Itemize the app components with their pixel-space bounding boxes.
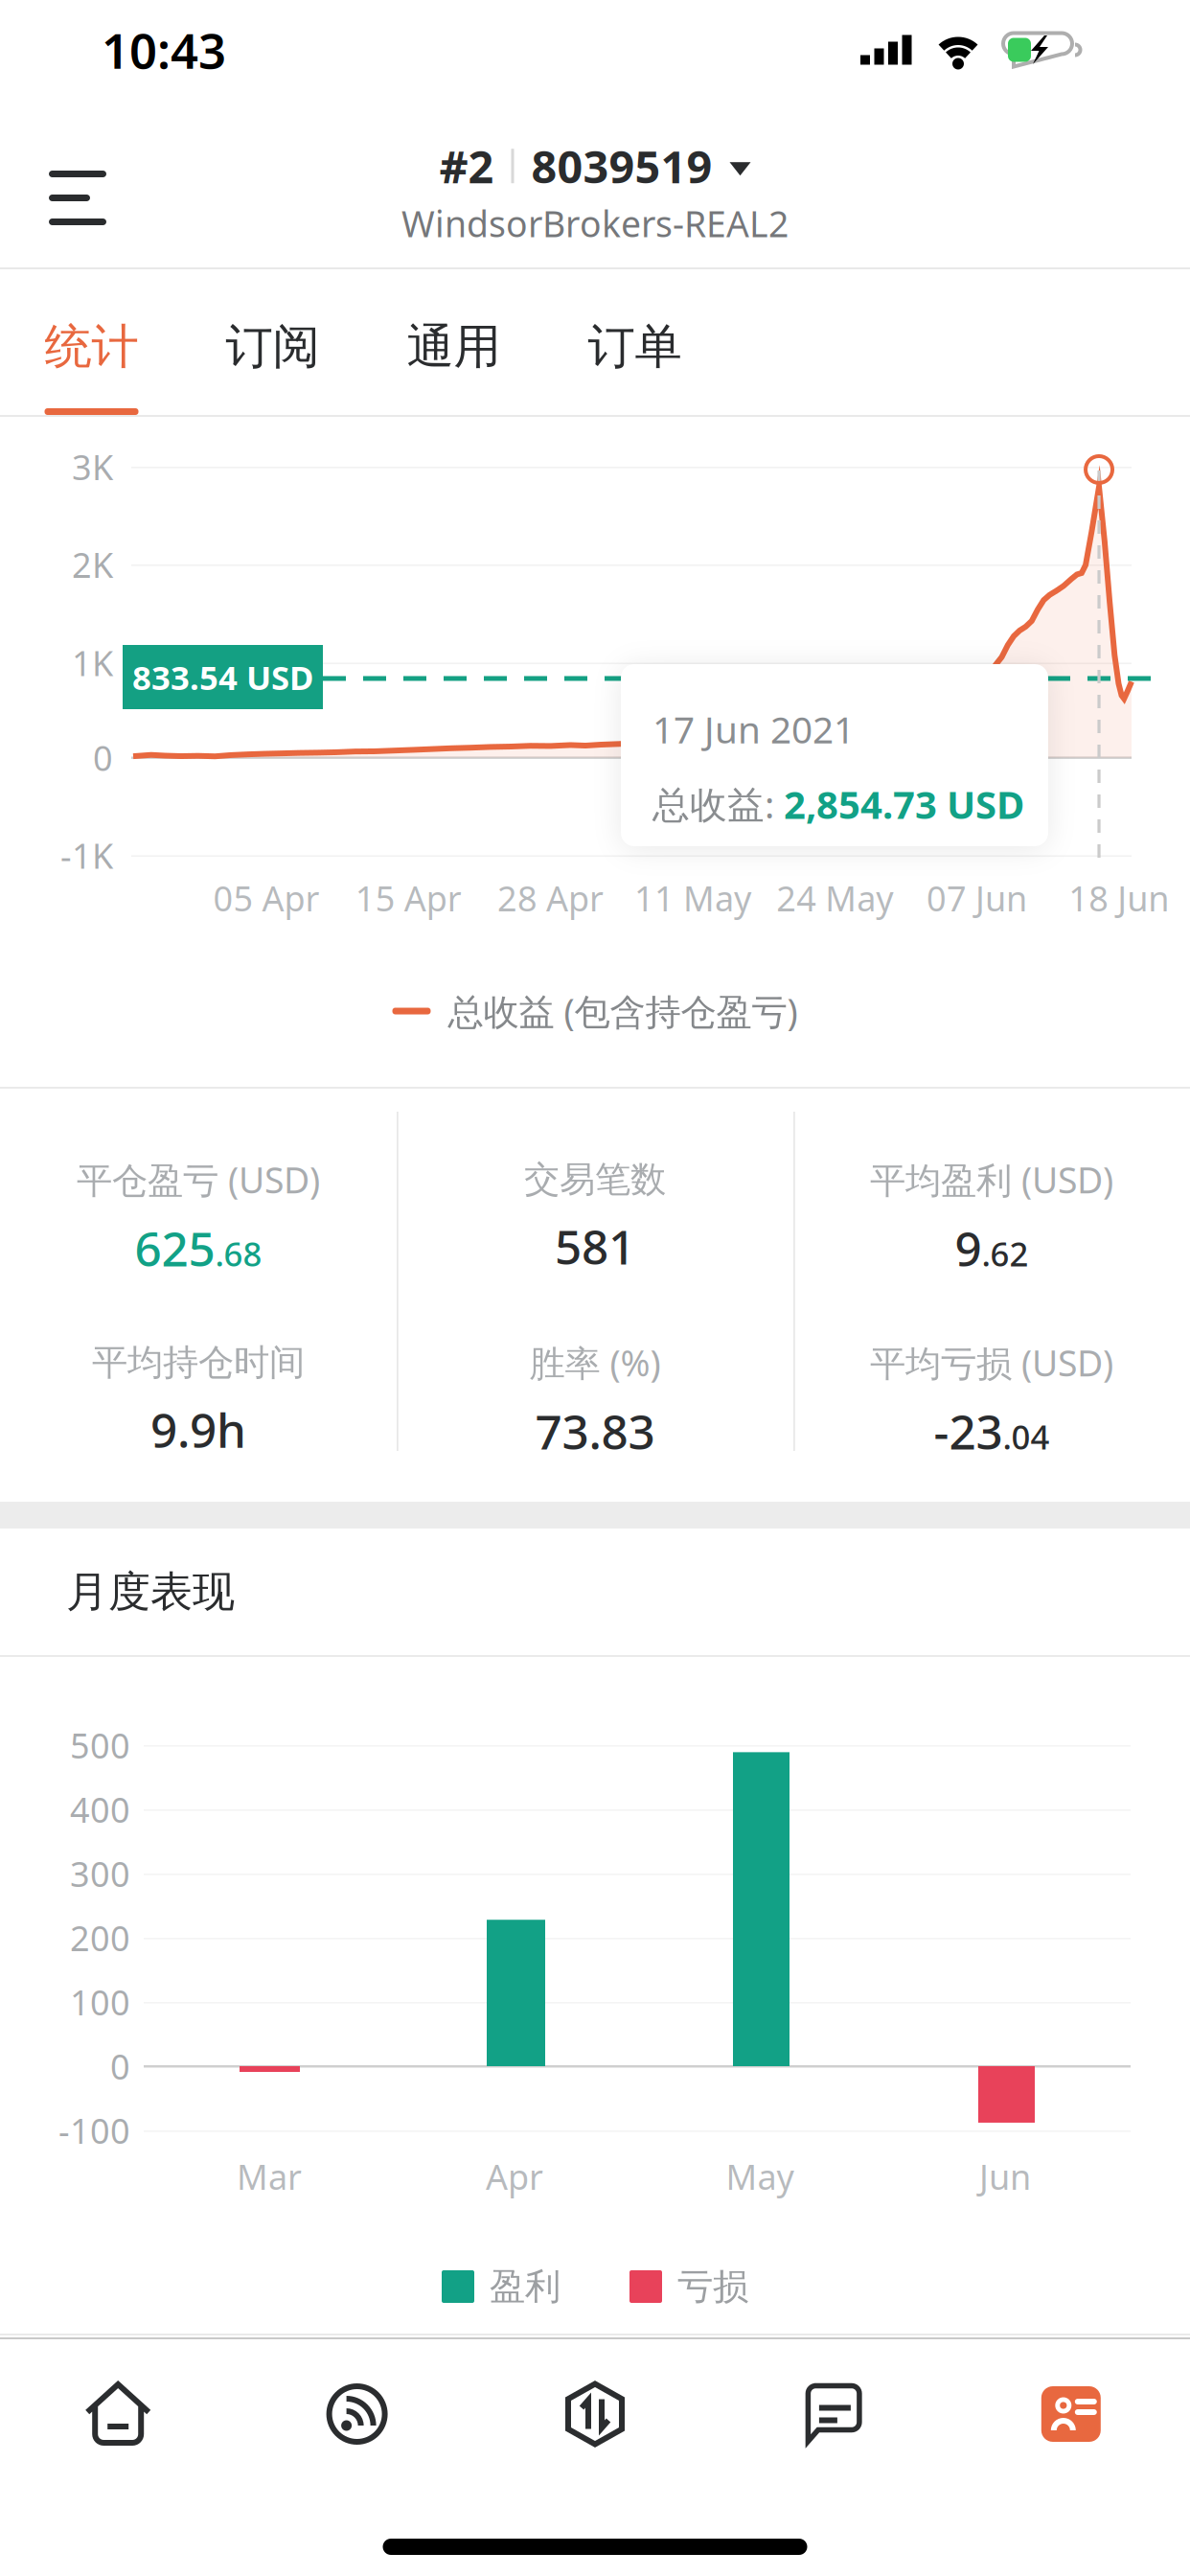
staticText: .04	[1003, 1415, 1050, 1459]
staticText: 3K	[72, 444, 113, 490]
staticText: 10:43	[102, 18, 226, 82]
button[interactable]: 订阅	[182, 269, 363, 415]
staticText: .62	[982, 1231, 1029, 1276]
staticText: 平仓盈亏 (USD)	[77, 1156, 320, 1203]
staticText: 2,854.73 USD	[784, 778, 1024, 829]
button[interactable]: 订单	[544, 269, 725, 415]
staticText: 平均持仓时间	[92, 1341, 305, 1385]
staticText: 月度表现	[66, 1566, 235, 1618]
staticText: 11 May	[634, 875, 751, 921]
staticText: -100	[58, 2107, 130, 2153]
staticText: 盈利	[490, 2265, 561, 2309]
staticText: 625	[135, 1217, 215, 1279]
staticText: 总收益:	[652, 779, 784, 828]
staticText: 1K	[72, 640, 113, 686]
staticText: 胜率 (%)	[529, 1339, 661, 1386]
staticText: 05 Apr	[213, 875, 320, 921]
button[interactable]: Messages	[714, 2341, 952, 2487]
staticText: 交易笔数	[524, 1158, 666, 1202]
staticText: 300	[70, 1851, 130, 1896]
staticText: 18 Jun	[1069, 875, 1169, 921]
staticText: WindsorBrokers-REAL2	[401, 200, 789, 247]
staticText: 28 Apr	[497, 875, 604, 921]
staticText: -1K	[60, 832, 113, 878]
staticText: 0	[93, 735, 113, 780]
staticText: 400	[70, 1786, 130, 1832]
button[interactable]: 统计	[1, 269, 182, 415]
staticText: 通用	[407, 318, 501, 376]
staticText: -23	[934, 1400, 1003, 1463]
staticText: 8039519	[531, 136, 712, 196]
staticText: 73.83	[535, 1400, 655, 1463]
staticText: 订单	[588, 318, 682, 376]
button[interactable]: Signals	[238, 2339, 476, 2489]
staticText: Apr	[486, 2153, 543, 2199]
staticText: 总收益 (包含持仓盈亏)	[448, 987, 798, 1035]
button[interactable]: 通用	[363, 269, 544, 415]
staticText: 500	[70, 1722, 130, 1768]
staticText: 9	[955, 1217, 982, 1279]
staticText: .68	[215, 1231, 262, 1276]
staticText: 07 Jun	[927, 875, 1027, 921]
staticText: 24 May	[776, 875, 893, 921]
staticText: 833.54 USD	[132, 655, 313, 699]
staticText: 平均亏损 (USD)	[870, 1339, 1113, 1386]
staticText: 订阅	[226, 318, 320, 376]
button[interactable]: Trade	[476, 2339, 714, 2489]
button[interactable]: Account	[952, 2339, 1190, 2489]
staticText: 15 Apr	[355, 875, 462, 921]
staticText: 100	[70, 1979, 130, 2025]
staticText: 统计	[45, 318, 138, 376]
staticText: 2K	[72, 542, 113, 587]
staticText: 亏损	[677, 2265, 748, 2309]
staticText: 平均盈利 (USD)	[870, 1156, 1113, 1203]
button[interactable]: Menu	[0, 116, 154, 267]
staticText: #2	[439, 136, 494, 196]
staticText: Mar	[237, 2153, 302, 2199]
staticText: 9.9h	[150, 1398, 246, 1461]
staticText: Jun	[979, 2153, 1031, 2199]
staticText: May	[726, 2153, 794, 2199]
button[interactable]: Home	[0, 2338, 238, 2490]
staticText: 581	[555, 1215, 635, 1278]
staticText: 17 Jun 2021	[652, 704, 855, 754]
staticText: 0	[110, 2043, 130, 2089]
staticText: 200	[70, 1915, 130, 1961]
